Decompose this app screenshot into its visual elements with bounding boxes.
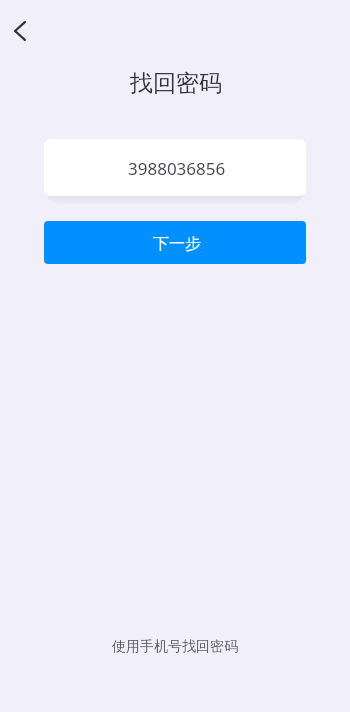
button[interactable]: 使用手机号找回密码 <box>104 634 246 660</box>
staticText: 使用手机号找回密码 <box>112 638 238 656</box>
button[interactable]: 下一步 <box>44 221 306 264</box>
staticText: 3988036856 <box>128 157 226 180</box>
button[interactable]: 3988036856 <box>44 139 306 196</box>
button[interactable]: Back <box>1 12 39 50</box>
staticText: 下一步 <box>153 234 201 254</box>
staticText: 找回密码 <box>1 69 350 98</box>
